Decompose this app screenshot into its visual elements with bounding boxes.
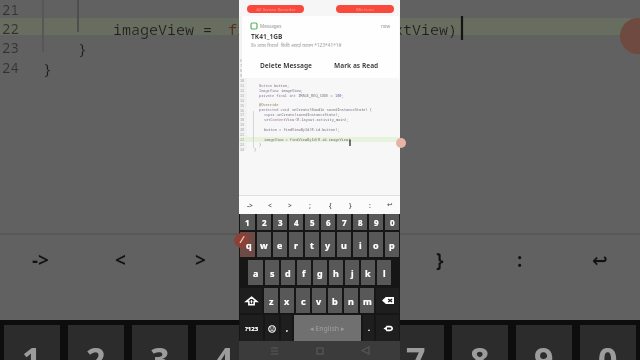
staticText: onCreate(Bundle savedInstanceState) {	[290, 107, 372, 112]
staticText: ?123	[245, 325, 259, 333]
staticText: 11	[240, 83, 245, 88]
button[interactable]: Recent apps	[263, 341, 285, 360]
button[interactable]: 8	[353, 214, 367, 230]
button[interactable]: <	[260, 196, 280, 214]
button[interactable]: ,	[281, 315, 292, 342]
button[interactable]: c	[296, 288, 310, 313]
staticText: }	[436, 247, 444, 273]
staticText: ;	[277, 247, 283, 273]
button[interactable]: 7	[337, 214, 351, 230]
button[interactable]: u	[337, 232, 351, 257]
staticText: 22	[2, 19, 19, 38]
button[interactable]: Home	[309, 341, 331, 360]
staticText: button = findViewById(R.id.button);	[264, 127, 340, 132]
button[interactable]: a	[248, 260, 263, 285]
staticText: 24	[240, 147, 245, 152]
button[interactable]: Shift	[240, 288, 262, 313]
button[interactable]: {	[320, 196, 340, 214]
staticText: 6	[240, 58, 243, 63]
button[interactable]: ->	[239, 196, 260, 214]
button[interactable]: :	[360, 196, 380, 214]
button[interactable]: x	[280, 288, 294, 313]
button[interactable]: b	[328, 288, 342, 313]
button[interactable]: s	[265, 260, 279, 285]
staticText: now	[381, 23, 391, 29]
button[interactable]: p	[385, 232, 399, 257]
button[interactable]: AZ Screen Recorder	[247, 5, 304, 13]
button[interactable]: >	[280, 196, 300, 214]
button[interactable]: m	[360, 288, 374, 313]
button[interactable]: g	[313, 260, 327, 285]
staticText: o	[373, 239, 379, 251]
button[interactable]: 3	[273, 214, 287, 230]
staticText: >	[288, 201, 292, 210]
button[interactable]: Back	[354, 341, 376, 360]
staticText: {	[329, 201, 332, 210]
staticText: 5	[278, 336, 298, 360]
button[interactable]: o	[369, 232, 383, 257]
button[interactable]: ↩	[380, 196, 400, 214]
button[interactable]: y	[321, 232, 335, 257]
button[interactable]: 6	[321, 214, 335, 230]
staticText: m	[363, 295, 372, 307]
button[interactable]: Mark as Read	[321, 59, 391, 72]
button[interactable]: }	[340, 196, 360, 214]
staticText: 4	[294, 217, 299, 228]
button[interactable]: ;	[300, 196, 320, 214]
button[interactable]: j	[345, 260, 359, 285]
button[interactable]: w	[257, 232, 271, 257]
staticText: a	[253, 267, 259, 279]
staticText: v	[316, 295, 322, 307]
button[interactable]: q	[240, 232, 255, 257]
button[interactable]: i	[353, 232, 367, 257]
staticText: i	[359, 239, 362, 251]
staticText: d	[285, 267, 291, 279]
button[interactable]: h	[329, 260, 343, 285]
staticText: ◂ English ▸	[310, 324, 345, 334]
staticText: Delete Message	[260, 61, 313, 70]
staticText: t	[310, 239, 314, 251]
button[interactable]: 0	[385, 214, 399, 230]
staticText: }	[43, 58, 53, 78]
button[interactable]: k	[361, 260, 375, 285]
button[interactable]: d	[281, 260, 295, 285]
button[interactable]: l	[377, 260, 391, 285]
button[interactable]: .	[363, 315, 374, 342]
staticText: :	[369, 201, 371, 210]
button[interactable]: 5	[305, 214, 319, 230]
button[interactable]: r	[289, 232, 303, 257]
staticText: 0	[390, 217, 395, 228]
staticText: 8	[470, 336, 490, 360]
staticText: r	[294, 239, 299, 251]
button[interactable]: 1	[240, 214, 255, 230]
staticText: >	[195, 247, 206, 273]
staticText: Mark as Read	[334, 61, 379, 70]
button[interactable]: Backspace	[376, 288, 399, 313]
button[interactable]: Mic is on	[336, 5, 394, 13]
staticText: 23	[240, 142, 245, 147]
button[interactable]: 4	[289, 214, 303, 230]
button[interactable]: ◂ English ▸	[294, 315, 361, 342]
button[interactable]: t	[305, 232, 319, 257]
button[interactable]: z	[264, 288, 278, 313]
button[interactable]: Enter	[376, 315, 399, 342]
staticText: 9	[534, 336, 554, 360]
button[interactable]: n	[344, 288, 358, 313]
button[interactable]: 2	[257, 214, 271, 230]
staticText: imageView;	[279, 88, 303, 93]
staticText: super	[264, 112, 275, 117]
button[interactable]: e	[273, 232, 287, 257]
button[interactable]: 9	[369, 214, 383, 230]
staticText: 1	[22, 336, 42, 360]
button[interactable]: v	[312, 288, 326, 313]
staticText: 7	[406, 336, 426, 360]
button[interactable]: ?123	[240, 315, 263, 342]
staticText: 1	[245, 217, 250, 228]
staticText: 2	[86, 336, 106, 360]
button[interactable]: f	[297, 260, 311, 285]
button[interactable]: Delete Message	[252, 59, 321, 72]
staticText: 9	[374, 217, 379, 228]
button[interactable]: Emoji	[265, 315, 279, 342]
staticText: 9	[240, 73, 243, 78]
staticText: Mic is on	[356, 6, 374, 12]
